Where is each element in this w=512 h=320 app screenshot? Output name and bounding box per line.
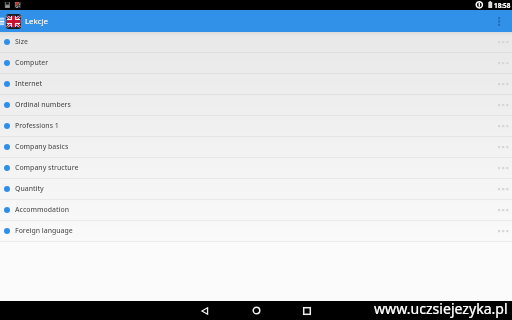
staticText: Computer (15, 58, 49, 67)
staticText: Quantity (15, 184, 44, 193)
button[interactable]: Ordinal numbers (0, 95, 512, 116)
button[interactable]: More options for Computer (494, 52, 512, 73)
staticText: Company structure (15, 163, 79, 172)
staticText: Size (15, 37, 28, 46)
staticText: Ordinal numbers (15, 100, 71, 109)
button[interactable]: More options for Size (494, 31, 512, 52)
staticText: Foreign language (15, 226, 73, 235)
button[interactable]: More options for Professions 1 (494, 115, 512, 136)
button[interactable]: More options for Company basics (494, 136, 512, 157)
button[interactable]: More options for Accommodation (494, 199, 512, 220)
button[interactable]: Internet (0, 74, 512, 95)
button[interactable]: More options for Ordinal numbers (494, 94, 512, 115)
staticText: Internet (15, 79, 43, 88)
staticText: 18:58 (494, 1, 511, 10)
button[interactable]: Size (0, 32, 512, 53)
staticText: Lekcje (25, 16, 48, 27)
button[interactable]: Computer (0, 53, 512, 74)
button[interactable]: Accommodation (0, 200, 512, 221)
button[interactable]: Company basics (0, 137, 512, 158)
staticText: www.uczsiejezyka.pl (374, 299, 508, 318)
button[interactable]: Lekcje (6, 10, 66, 32)
button[interactable]: Foreign language (0, 221, 512, 242)
button[interactable]: Home (242, 301, 270, 320)
button[interactable]: More options for Company structure (494, 157, 512, 178)
button[interactable]: Professions 1 (0, 116, 512, 137)
button[interactable]: Recent apps (293, 301, 321, 320)
staticText: Company basics (15, 142, 69, 151)
button[interactable]: More options (490, 10, 508, 32)
staticText: Accommodation (15, 205, 69, 214)
button[interactable]: More options for Quantity (494, 178, 512, 199)
button[interactable]: Open navigation drawer (0, 10, 6, 32)
button[interactable]: Quantity (0, 179, 512, 200)
button[interactable]: More options for Foreign language (494, 220, 512, 241)
button[interactable]: Company structure (0, 158, 512, 179)
staticText: Professions 1 (15, 121, 59, 130)
button[interactable]: More options for Internet (494, 73, 512, 94)
button[interactable]: Back (191, 301, 219, 320)
